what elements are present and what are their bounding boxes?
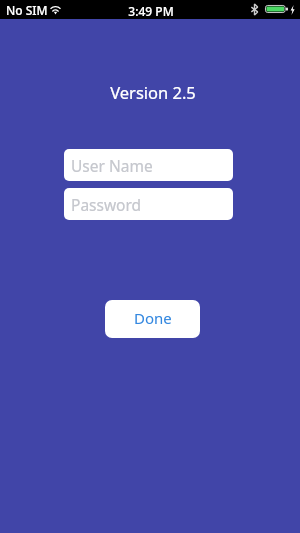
button[interactable]: User Name <box>64 149 233 181</box>
staticText: Done <box>134 308 172 328</box>
staticText: No SIM <box>6 2 48 18</box>
button[interactable]: Done <box>105 300 200 338</box>
button[interactable]: Password <box>64 188 233 220</box>
staticText: Password <box>71 194 142 215</box>
staticText: User Name <box>71 155 153 176</box>
staticText: 3:49 PM <box>1 3 300 19</box>
staticText: Version 2.5 <box>3 81 300 103</box>
